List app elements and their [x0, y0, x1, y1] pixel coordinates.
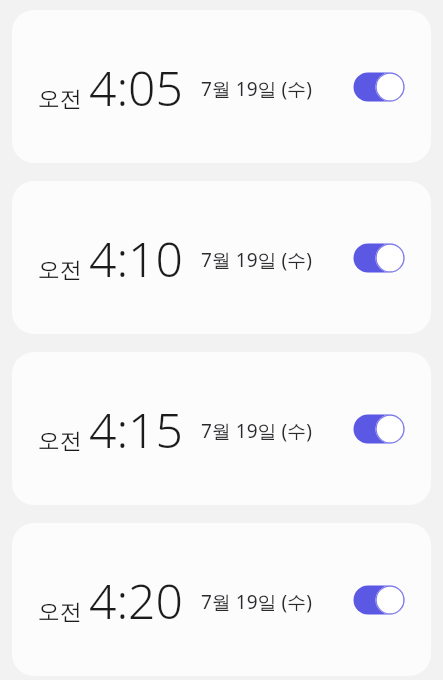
staticText: 4:20 — [89, 568, 183, 633]
staticText: 오전 — [38, 85, 82, 113]
staticText: 7월 19일 (수) — [201, 418, 312, 444]
staticText: 오전 — [38, 256, 82, 284]
staticText: 오전 — [38, 598, 82, 626]
staticText: 4:05 — [89, 55, 183, 120]
button[interactable]: Toggle alarm — [353, 242, 405, 274]
button[interactable]: Toggle alarm — [353, 71, 405, 103]
button[interactable]: 오전 — [12, 523, 431, 676]
staticText: 오전 — [38, 427, 82, 455]
staticText: 4:15 — [89, 397, 183, 462]
staticText: 7월 19일 (수) — [201, 589, 312, 615]
button[interactable]: 오전 — [12, 181, 431, 334]
staticText: 7월 19일 (수) — [201, 76, 312, 102]
button[interactable]: 오전 — [12, 352, 431, 505]
button[interactable]: 오전 — [12, 10, 431, 163]
staticText: 4:10 — [89, 226, 183, 291]
staticText: 7월 19일 (수) — [201, 247, 312, 273]
button[interactable]: Toggle alarm — [353, 584, 405, 616]
button[interactable]: Toggle alarm — [353, 413, 405, 445]
